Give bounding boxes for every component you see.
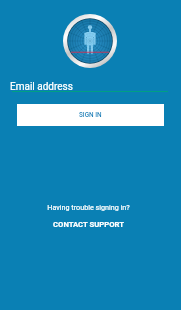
staticText: SIGN IN — [79, 111, 102, 119]
button[interactable]: CONTACT SUPPORT — [53, 220, 124, 229]
staticText: Email address — [10, 81, 73, 93]
staticText: CONTACT SUPPORT — [53, 220, 124, 229]
other: App logo — [63, 14, 117, 68]
button[interactable]: SIGN IN — [17, 104, 164, 126]
button[interactable]: Email address — [10, 79, 166, 93]
staticText: Having trouble signing in? — [47, 203, 130, 211]
